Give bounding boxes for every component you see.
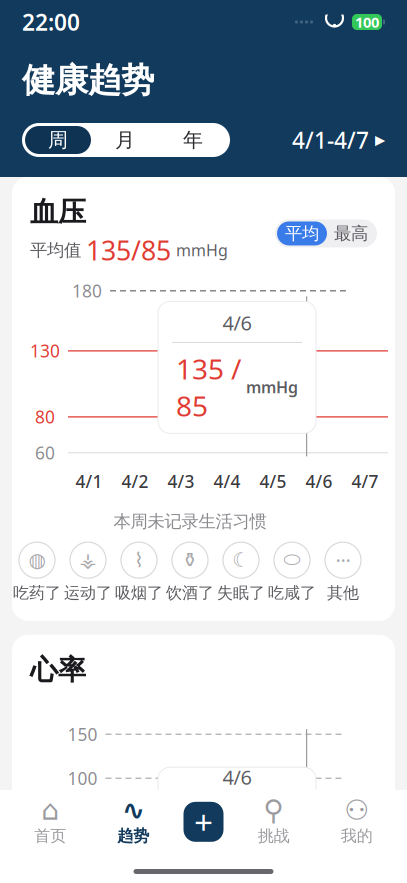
staticText: 挑战 <box>258 826 290 846</box>
staticText: 趋势 <box>117 826 149 846</box>
staticText: 年 <box>183 128 203 152</box>
staticText: mmHg <box>176 239 228 261</box>
button[interactable]: ⌇ <box>114 542 164 603</box>
button[interactable]: 平均 <box>277 221 327 245</box>
staticText: ⌂ <box>41 794 59 826</box>
button[interactable]: 周 <box>25 126 91 154</box>
staticText: + <box>194 800 213 844</box>
staticText: 平均 <box>285 223 319 244</box>
button[interactable]: Add record <box>183 802 223 842</box>
staticText: ◍ <box>28 549 45 571</box>
staticText: 4/5 <box>259 470 286 493</box>
button[interactable]: 年 <box>159 126 227 154</box>
staticText: ⚱ <box>181 549 198 571</box>
staticText: 130 <box>30 339 60 362</box>
staticText: 心率 <box>30 653 86 687</box>
staticText: 4/1 <box>75 470 102 493</box>
button[interactable]: ◍ <box>12 542 62 603</box>
staticText: ☾ <box>232 549 250 571</box>
staticText: 135/85 <box>86 232 171 268</box>
staticText: ⚇ <box>344 794 369 826</box>
button[interactable]: ☾ <box>216 542 266 603</box>
staticText: 4/7 <box>351 470 378 493</box>
staticText: 运动了 <box>64 583 112 603</box>
staticText: 我的 <box>341 826 373 846</box>
staticText: 4/6 <box>222 309 251 336</box>
staticText: ⌇ <box>134 549 144 571</box>
staticText: 其他 <box>327 583 359 603</box>
staticText: 150 <box>67 723 97 746</box>
button[interactable]: ⚲ <box>241 798 307 846</box>
staticText: 4/2 <box>121 470 148 493</box>
button[interactable]: ∿ <box>100 798 166 846</box>
staticText: 最高 <box>334 223 368 244</box>
staticText: ⚲ <box>263 794 284 826</box>
staticText: ∿ <box>122 794 145 826</box>
staticText: ▶ <box>375 132 385 147</box>
staticText: 180 <box>72 279 102 302</box>
staticText: 饮酒了 <box>166 583 214 603</box>
button[interactable]: ··· <box>318 542 368 603</box>
staticText: 血压 <box>30 195 86 229</box>
staticText: mmHg <box>246 376 298 398</box>
staticText: 月 <box>115 128 135 152</box>
staticText: 吃药了 <box>13 583 61 603</box>
staticText: 80 <box>35 405 55 428</box>
staticText: 4/6 <box>222 764 251 790</box>
staticText: 22:00 <box>22 7 80 37</box>
staticText: 平均值 <box>30 239 81 261</box>
button[interactable]: ⚶ <box>63 542 113 603</box>
staticText: 失眠了 <box>217 583 265 603</box>
staticText: ⚶ <box>79 549 96 571</box>
button[interactable]: 4/1-4/7 <box>292 119 385 161</box>
staticText: ··· <box>335 547 350 573</box>
button[interactable]: ⌂ <box>17 798 83 846</box>
staticText: 4/3 <box>167 470 194 493</box>
staticText: 4/6 <box>305 470 332 493</box>
staticText: 吸烟了 <box>115 583 163 603</box>
staticText: 健康趋势 <box>22 60 154 101</box>
staticText: 135 / 85 <box>176 350 241 424</box>
staticText: 周 <box>48 128 68 152</box>
staticText: 首页 <box>34 826 66 846</box>
staticText: 100 <box>355 12 379 32</box>
button[interactable]: ⚱ <box>165 542 215 603</box>
staticText: 吃咸了 <box>268 583 316 603</box>
staticText: 4/1-4/7 <box>292 125 369 155</box>
button[interactable]: 最高 <box>327 221 375 245</box>
button[interactable]: 月 <box>91 126 159 154</box>
staticText: ⬭ <box>283 550 300 570</box>
button[interactable]: ⬭ <box>267 542 317 603</box>
staticText: 60 <box>35 441 55 464</box>
staticText: 100 <box>67 767 97 790</box>
button[interactable]: ⚇ <box>324 798 390 846</box>
staticText: 80 <box>221 803 253 841</box>
staticText: 本周未记录生活习惯 <box>113 511 266 532</box>
staticText: 4/4 <box>213 470 240 493</box>
